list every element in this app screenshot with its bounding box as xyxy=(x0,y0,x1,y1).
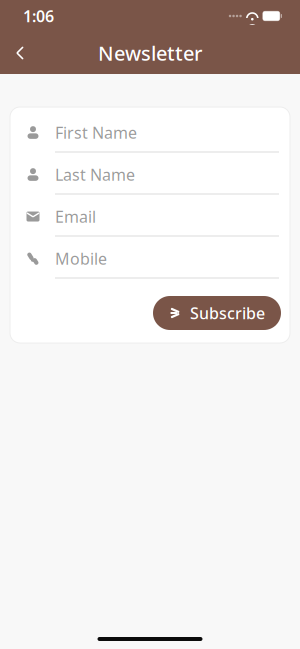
staticText: Newsletter xyxy=(98,40,202,66)
staticText: Mobile xyxy=(55,248,107,269)
staticText: Last Name xyxy=(55,164,135,185)
staticText: Subscribe xyxy=(190,302,265,324)
button[interactable]: Subscribe xyxy=(153,296,281,330)
staticText: Email xyxy=(55,206,96,227)
staticText: 1:06 xyxy=(23,5,54,27)
button[interactable]: Back xyxy=(0,32,40,74)
staticText: First Name xyxy=(55,122,137,143)
